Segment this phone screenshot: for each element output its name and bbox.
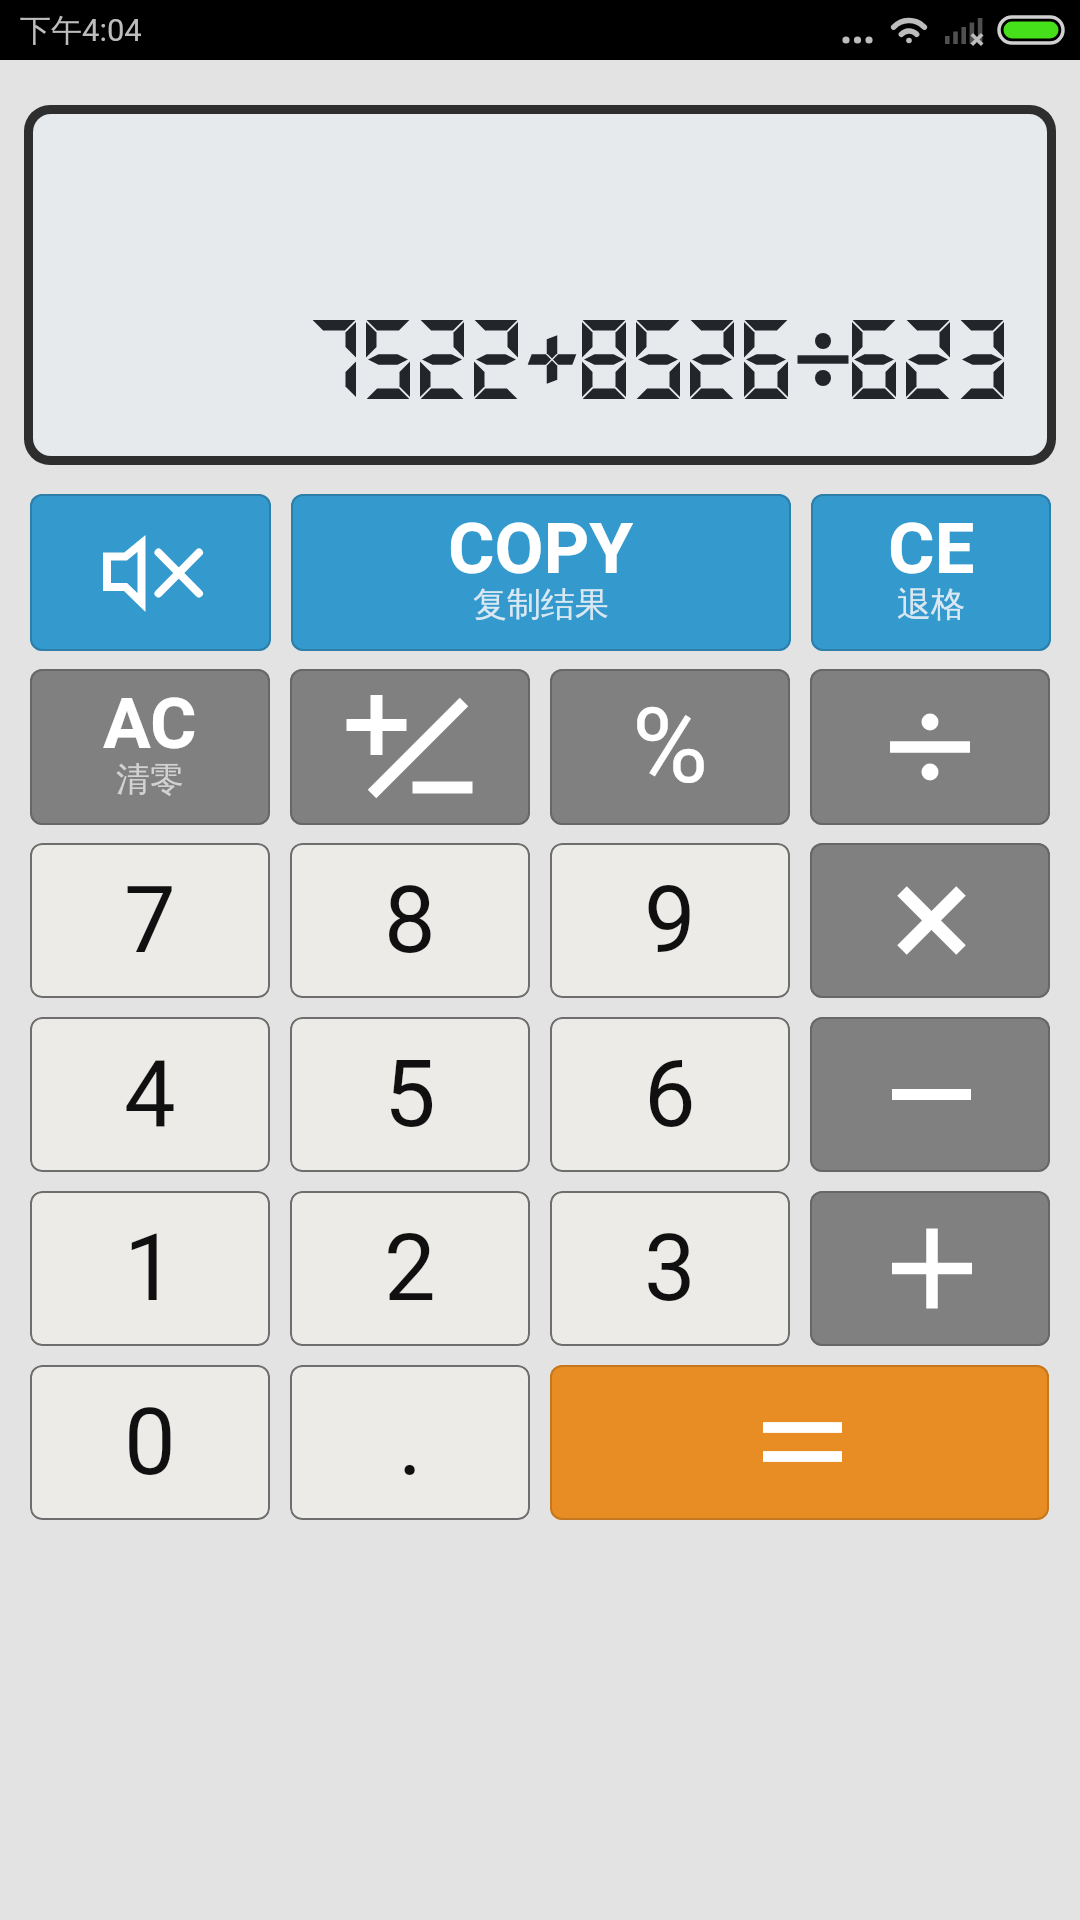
button[interactable]: 8 [290,843,530,998]
staticText: % [632,686,709,808]
staticText: 9 [644,867,696,975]
staticText: 7 [124,867,176,975]
staticText: 4 [124,1041,176,1149]
button[interactable]: 2 [290,1191,530,1346]
staticText: 3 [644,1215,696,1323]
staticText: 0 [124,1389,176,1497]
staticText: 6 [644,1041,696,1149]
button[interactable]: Add [810,1191,1050,1346]
staticText: 1 [124,1215,176,1323]
staticText: AC [103,682,197,765]
button[interactable]: 3 [550,1191,790,1346]
button[interactable]: CE [811,494,1051,651]
button[interactable]: Multiply [810,843,1050,998]
staticText: 复制结果 [473,583,609,626]
staticText: 2 [384,1215,436,1323]
button[interactable]: 0 [30,1365,270,1520]
staticText: COPY [448,507,634,590]
button[interactable]: 6 [550,1017,790,1172]
button[interactable]: 4 [30,1017,270,1172]
button[interactable]: Subtract [810,1017,1050,1172]
button[interactable]: Plus minus [290,669,530,825]
staticText: 退格 [897,583,965,626]
button[interactable]: 1 [30,1191,270,1346]
staticText: CE [888,507,975,590]
staticText: 8 [384,867,436,975]
button[interactable]: Mute [30,494,271,651]
button[interactable]: Equals [550,1365,1049,1520]
staticText: 下午4:04 [20,11,142,50]
button[interactable]: 7 [30,843,270,998]
button[interactable]: % [550,669,790,825]
button[interactable]: COPY [291,494,791,651]
button[interactable]: 5 [290,1017,530,1172]
button[interactable]: AC [30,669,270,825]
button[interactable]: 9 [550,843,790,998]
staticText: . [398,1389,423,1497]
staticText: 清零 [116,758,184,801]
button[interactable]: . [290,1365,530,1520]
button[interactable]: Divide [810,669,1050,825]
staticText: 5 [384,1041,436,1149]
